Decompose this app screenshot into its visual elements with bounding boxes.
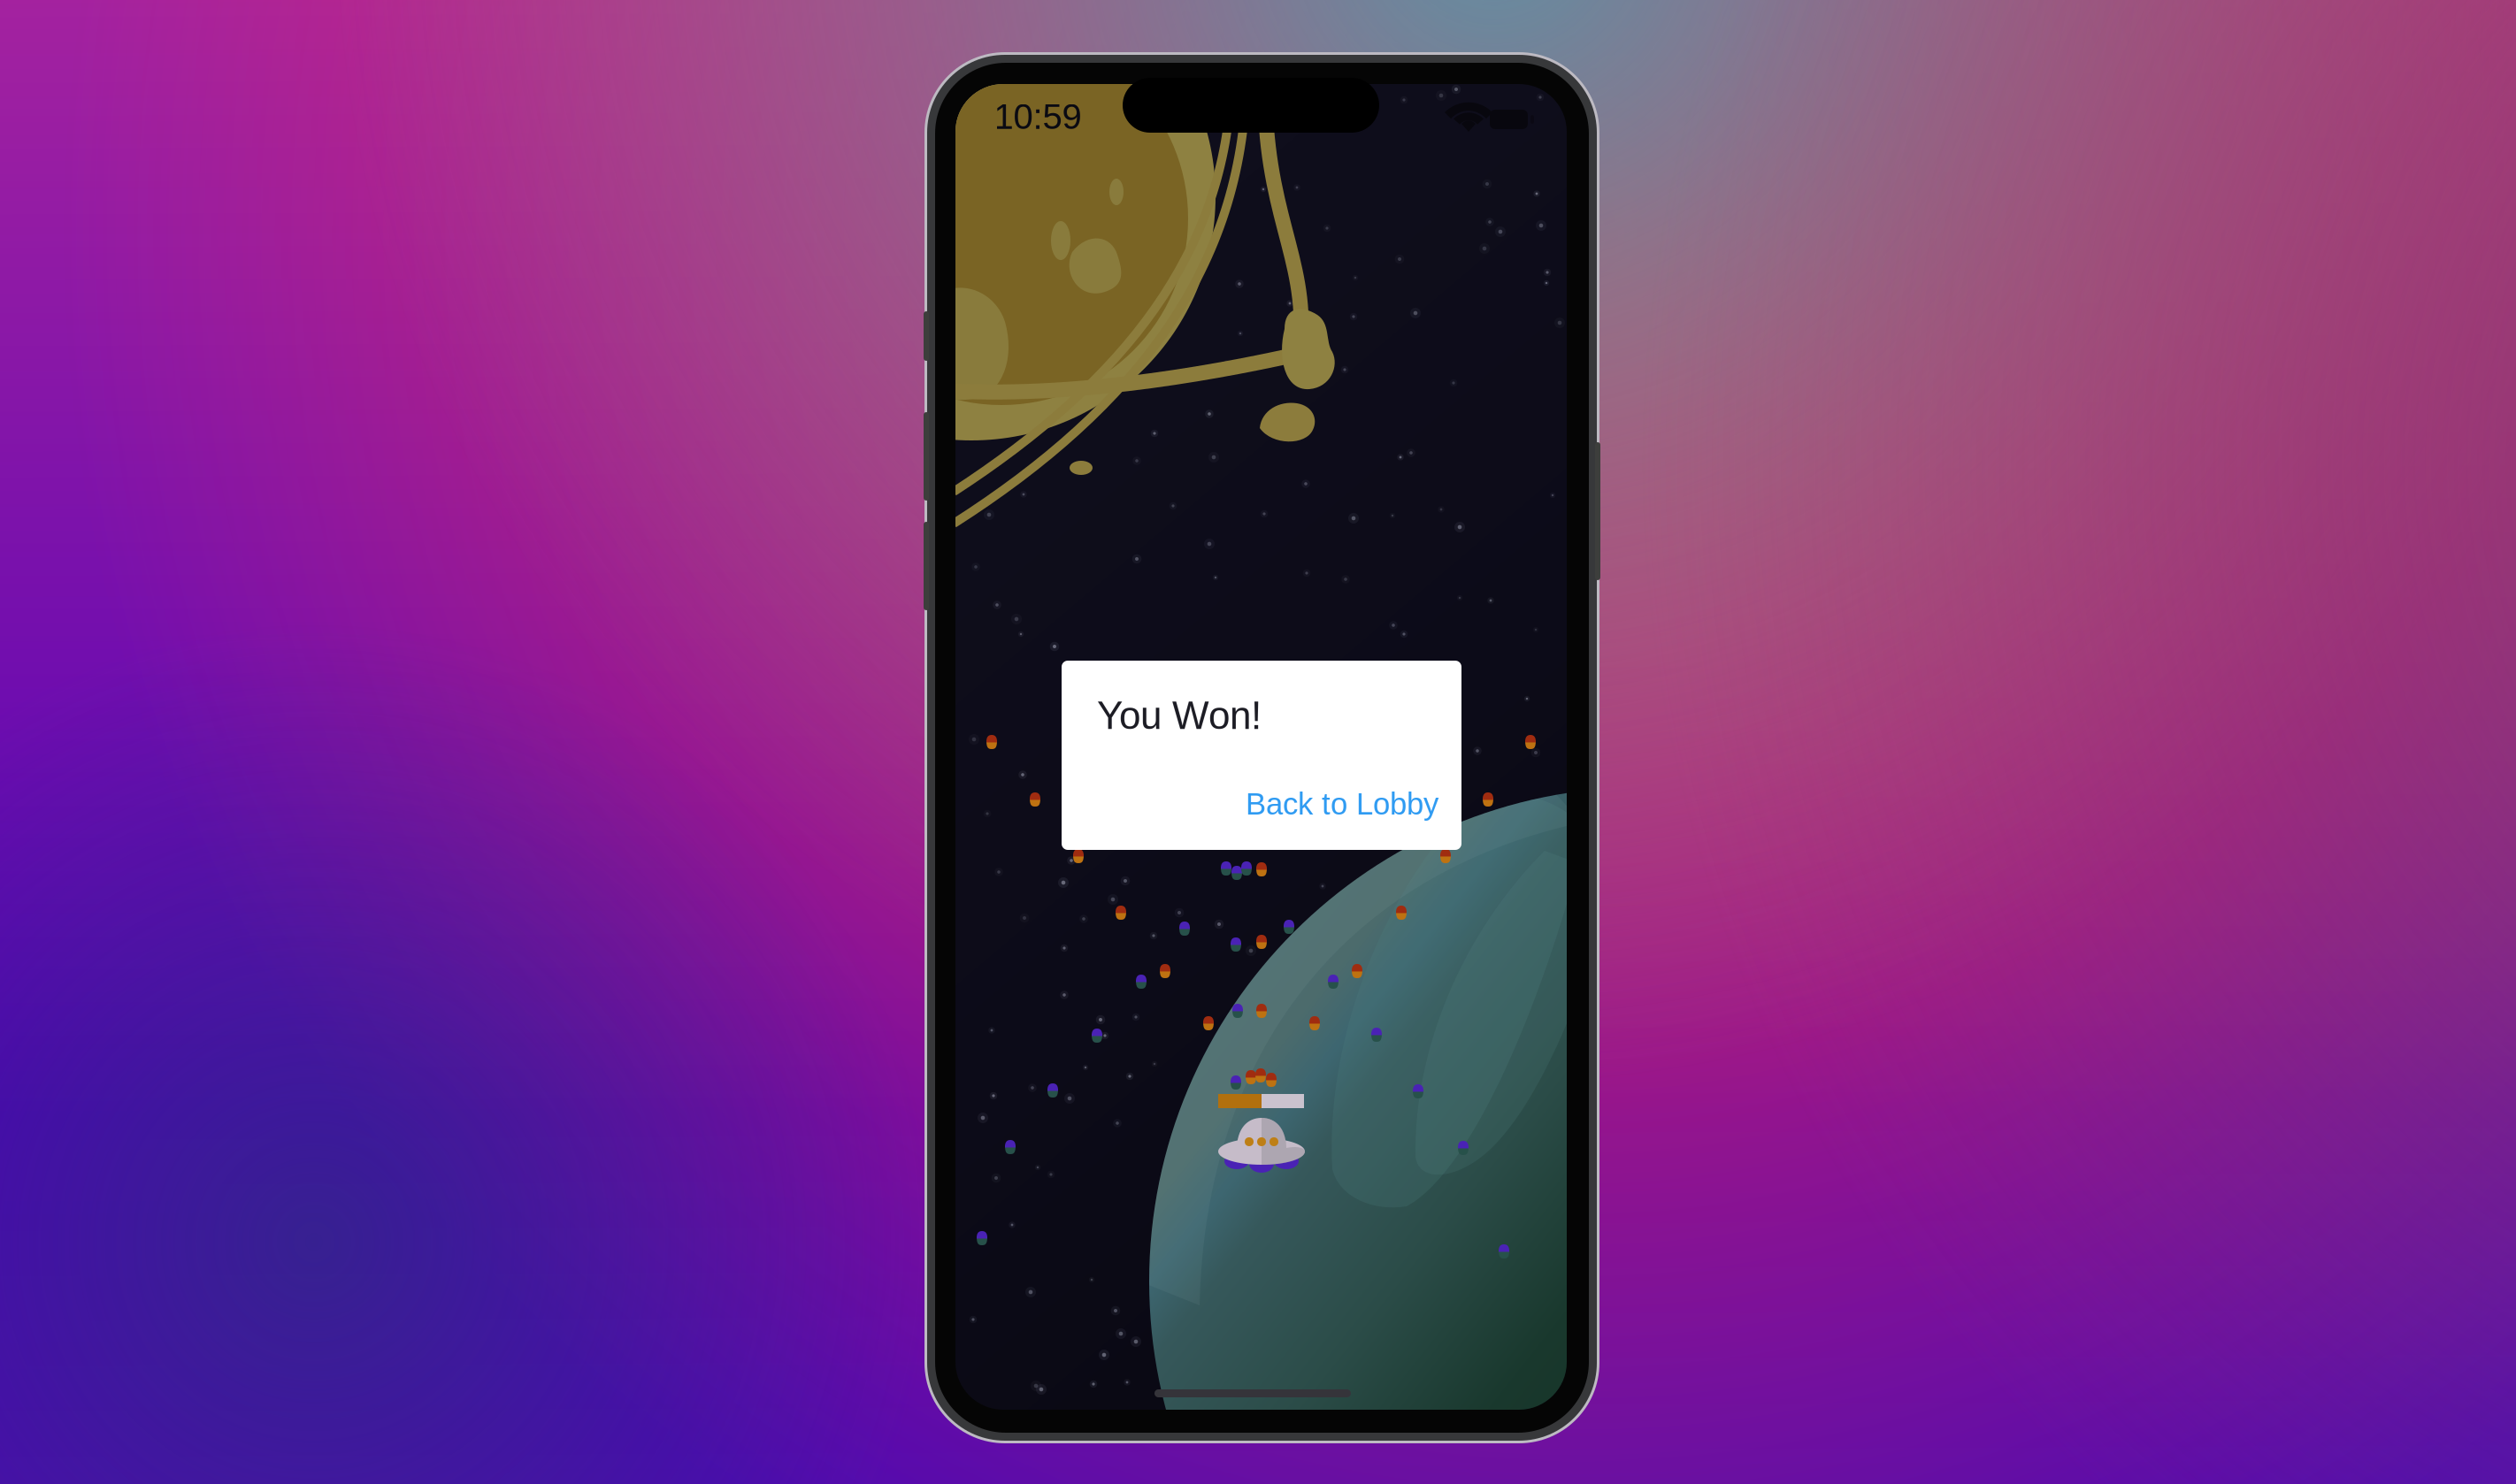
staticText: 10:59 — [994, 97, 1082, 137]
staticText: Back to Lobby — [1246, 787, 1438, 821]
button[interactable]: Back to Lobby — [1217, 776, 1461, 831]
staticText: You Won! — [1097, 694, 1262, 737]
